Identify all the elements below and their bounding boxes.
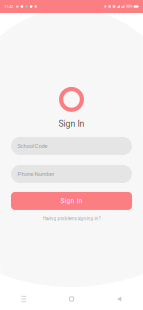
- staticText: Having problems signing in?: [42, 216, 100, 221]
- button[interactable]: Phone Number: [11, 165, 132, 183]
- staticText: Sign In: [60, 197, 82, 205]
- staticText: School Code: [17, 143, 47, 149]
- staticText: 98%: [126, 4, 133, 9]
- staticText: 11:42: [4, 4, 13, 9]
- staticText: Sign In: [58, 119, 84, 129]
- button[interactable]: Sign In: [11, 192, 132, 210]
- staticText: Phone Number: [17, 171, 54, 177]
- button[interactable]: Having problems signing in?: [40, 214, 102, 223]
- button[interactable]: Back: [95, 288, 143, 310]
- button[interactable]: Recent apps: [0, 288, 48, 310]
- button[interactable]: School Code: [11, 137, 132, 155]
- button[interactable]: Home: [48, 288, 95, 310]
